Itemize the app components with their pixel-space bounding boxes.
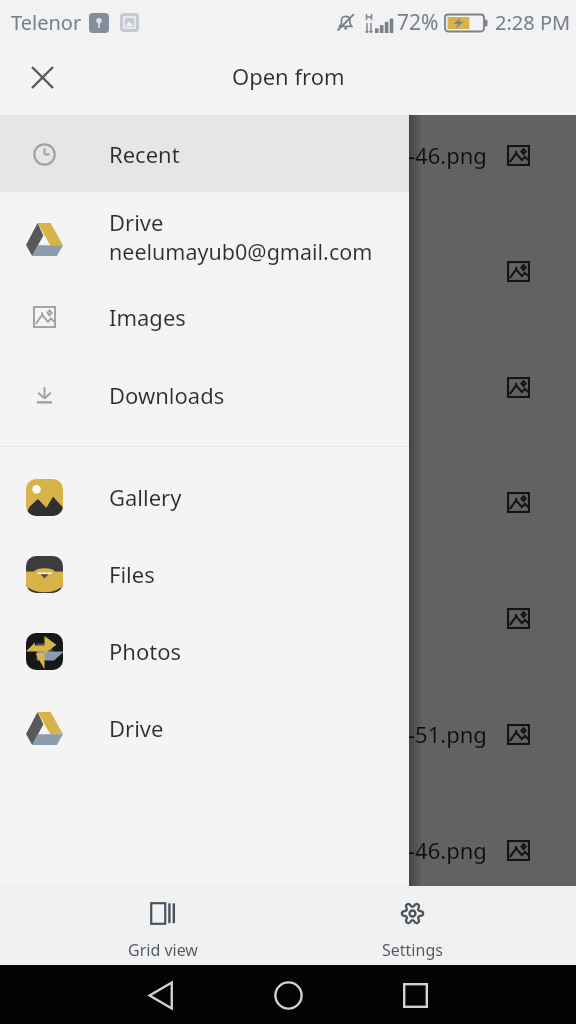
staticText: Settings <box>382 939 443 961</box>
staticText: Drive <box>109 207 164 237</box>
staticText: 72% <box>397 8 439 37</box>
staticText: Images <box>109 302 186 332</box>
button[interactable]: Recent <box>0 115 409 192</box>
button[interactable]: Recent apps <box>387 967 443 1023</box>
button[interactable]: Drive <box>0 689 409 766</box>
staticText: Recent <box>109 139 180 169</box>
staticText: -51.png <box>408 719 487 749</box>
staticText: Photos <box>109 636 182 666</box>
button[interactable]: Settings <box>342 886 482 965</box>
button[interactable]: Downloads <box>0 356 409 433</box>
button[interactable]: Files <box>0 535 409 612</box>
button[interactable]: Grid view <box>93 886 233 965</box>
staticText: -46.png <box>408 140 487 170</box>
staticText: Files <box>109 559 155 589</box>
button[interactable] <box>0 115 409 192</box>
button[interactable]: Back <box>133 967 189 1023</box>
button[interactable]: Close <box>20 55 64 99</box>
staticText: Open from <box>232 61 345 91</box>
staticText: Grid view <box>128 939 198 961</box>
staticText: Gallery <box>109 482 182 512</box>
button[interactable]: Photos <box>0 612 409 689</box>
button[interactable]: Images <box>0 278 409 355</box>
button[interactable]: Gallery <box>0 458 409 535</box>
staticText: 2:28 PM <box>495 9 571 36</box>
button[interactable]: Home <box>260 967 316 1023</box>
staticText: Drive <box>109 713 164 743</box>
staticText: -46.png <box>408 835 487 865</box>
staticText: Downloads <box>109 380 225 410</box>
staticText: neelumayub0@gmail.com <box>109 237 373 266</box>
staticText: Telenor <box>11 9 82 36</box>
button[interactable]: Drive <box>0 192 409 286</box>
